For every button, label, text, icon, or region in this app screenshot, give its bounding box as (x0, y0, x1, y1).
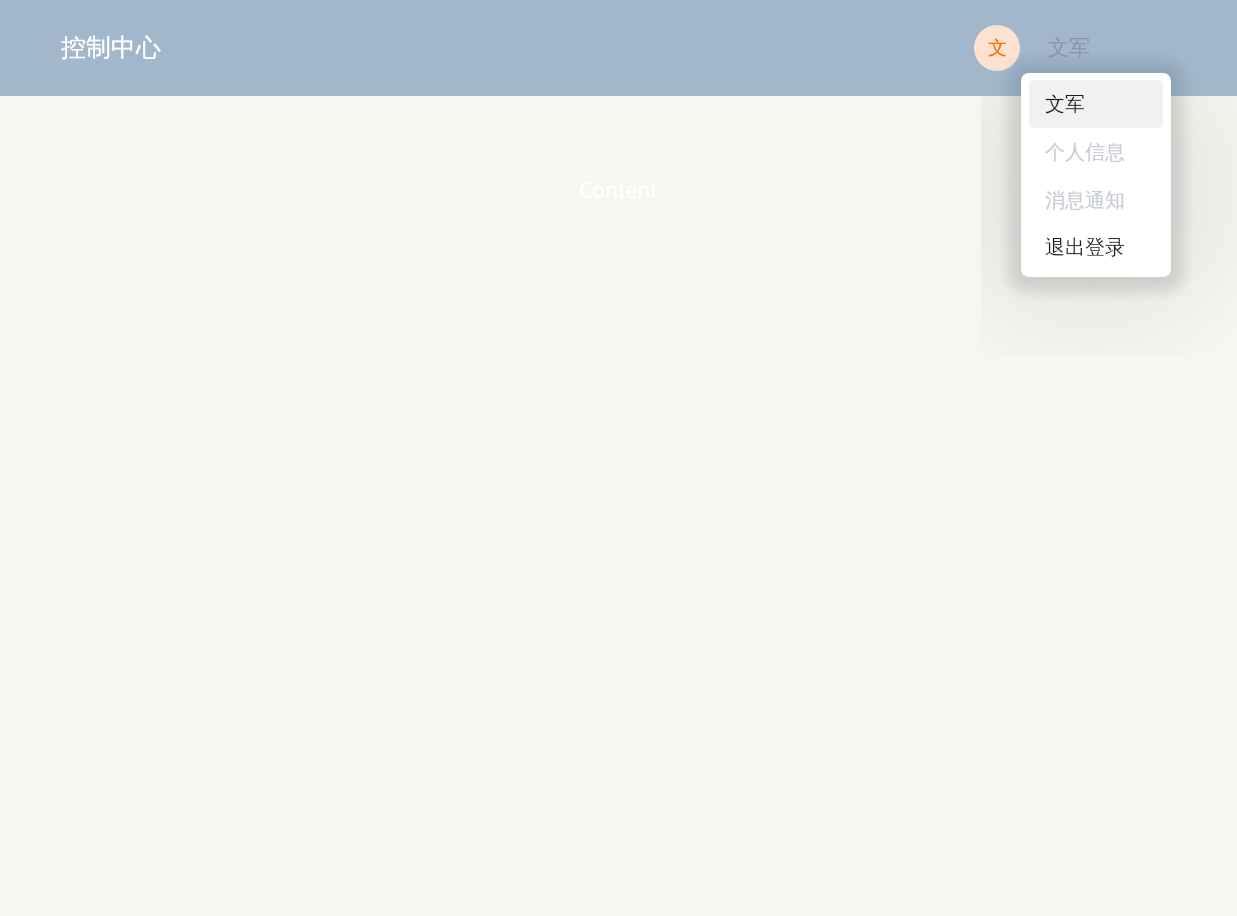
button[interactable]: 文军 (1029, 80, 1163, 128)
staticText: 文军 (1045, 92, 1085, 117)
staticText: 文军 (1048, 35, 1090, 61)
button[interactable]: 退出登录 (1029, 224, 1163, 270)
staticText: 文 (988, 36, 1007, 60)
staticText: 控制中心 (61, 32, 161, 63)
staticText: 退出登录 (1045, 235, 1125, 260)
staticText: Content (579, 176, 658, 205)
staticText: 个人信息 (1045, 140, 1125, 165)
staticText: 消息通知 (1045, 188, 1125, 213)
button[interactable]: User account menu (974, 25, 1090, 71)
button[interactable]: 消息通知 (1029, 176, 1163, 224)
button[interactable]: 个人信息 (1029, 128, 1163, 176)
